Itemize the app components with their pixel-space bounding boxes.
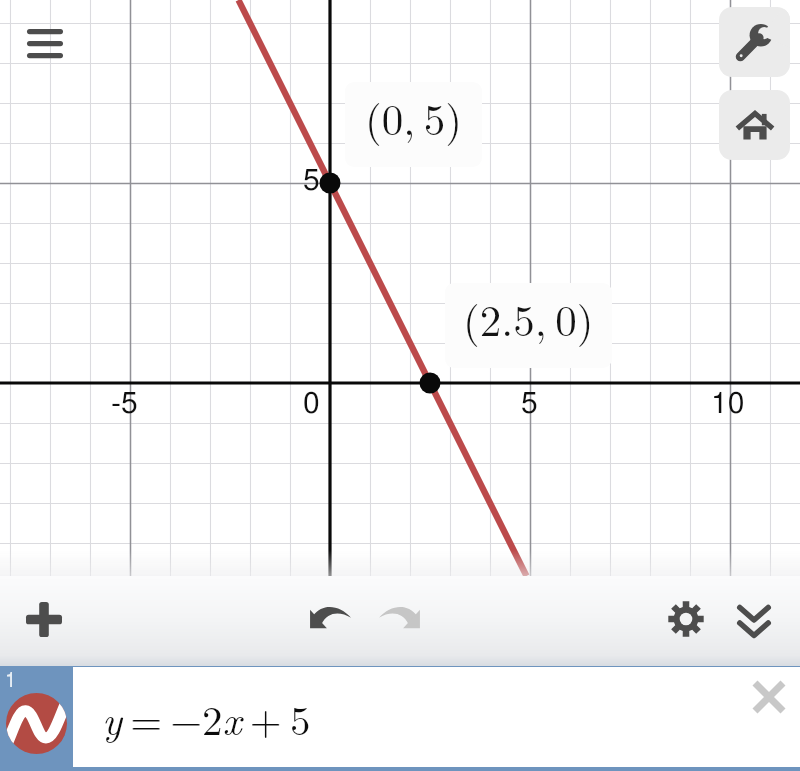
button[interactable]: Undo [305, 591, 355, 641]
button[interactable]: Menu [18, 16, 72, 70]
button[interactable]: y = −2x + 5 [73, 667, 800, 767]
button[interactable]: (2.5, 0) [445, 283, 612, 368]
button[interactable]: Tools [719, 7, 790, 77]
staticText: 5 [521, 389, 538, 415]
staticText: -5 [111, 389, 138, 415]
button[interactable]: Toggle plot visibility [6, 693, 67, 754]
staticText: (0, 5) [365, 87, 463, 148]
staticText: 5 [303, 166, 320, 192]
staticText: (2.5, 0) [463, 288, 594, 349]
staticText: y = −2x + 5 [102, 689, 311, 747]
button[interactable]: Delete expression [745, 673, 793, 721]
button[interactable]: Settings [661, 594, 711, 644]
staticText: 0 [303, 389, 320, 415]
button[interactable]: Redo [375, 591, 425, 641]
button[interactable]: Add expression [18, 593, 70, 645]
staticText: 10 [711, 389, 745, 415]
button[interactable]: Collapse keypad [729, 596, 779, 646]
button[interactable]: Home [719, 90, 790, 160]
staticText: 1 [5, 671, 17, 691]
button[interactable]: (0, 5) [345, 82, 482, 167]
